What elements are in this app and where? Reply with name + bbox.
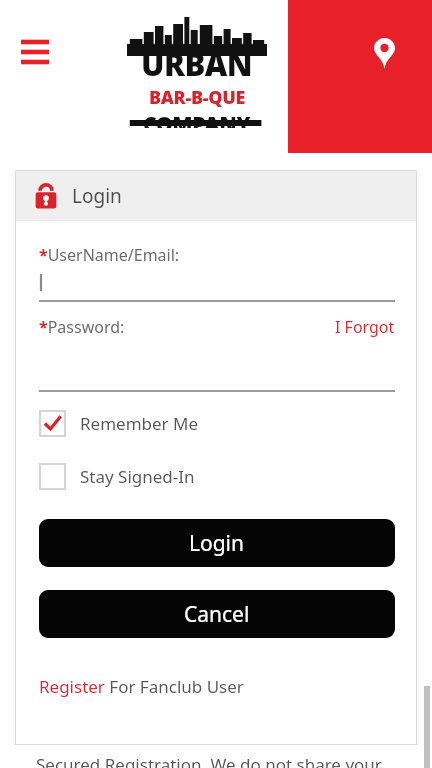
button[interactable]: Remember Me xyxy=(39,404,395,442)
staticText: I Forgot xyxy=(335,316,395,338)
button[interactable]: Cancel xyxy=(39,590,395,638)
button[interactable]: I Forgot xyxy=(335,316,395,338)
staticText: *UserName/Email: xyxy=(39,244,180,266)
staticText: Register For Fanclub User xyxy=(39,675,244,698)
button[interactable]: Urban Bar-B-Que Company xyxy=(127,24,267,128)
button[interactable]: Menu xyxy=(12,31,58,77)
staticText: Stay Signed-In xyxy=(80,465,195,488)
button[interactable]: Login xyxy=(39,519,395,567)
staticText: Cancel xyxy=(184,600,250,629)
staticText: Secured Registration. We do not share yo… xyxy=(36,753,382,768)
staticText: BAR-B-QUE xyxy=(149,85,246,110)
staticText: Remember Me xyxy=(80,412,199,435)
staticText: *Password: xyxy=(39,316,125,338)
staticText: Login xyxy=(189,529,245,558)
button[interactable] xyxy=(39,338,395,392)
staticText: URBAN xyxy=(141,43,253,85)
staticText: Login xyxy=(72,183,122,209)
button[interactable]: Locations xyxy=(288,0,432,153)
button[interactable]: Stay Signed-In xyxy=(39,457,395,495)
button[interactable] xyxy=(39,266,395,302)
button[interactable]: Register For Fanclub User xyxy=(39,675,244,698)
staticText: COMPANY xyxy=(143,110,251,128)
